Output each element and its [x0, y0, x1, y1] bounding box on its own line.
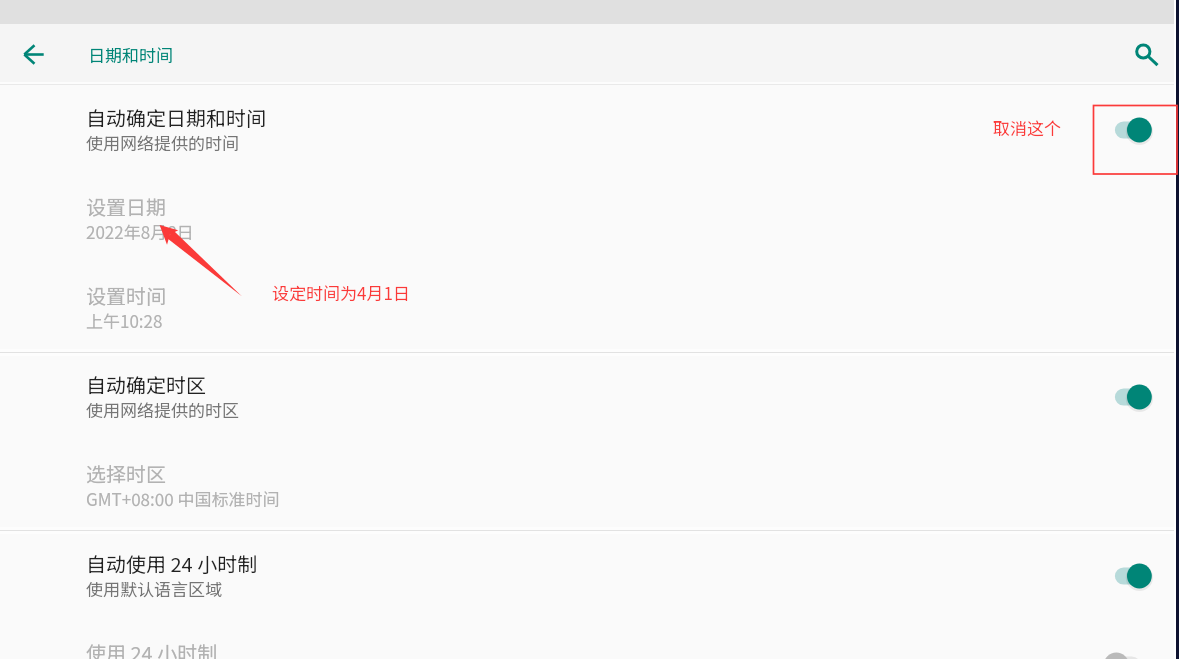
staticText: 设置日期	[86, 192, 166, 221]
staticText: 设定时间为4月1日	[272, 280, 410, 305]
staticText: 设置时间	[86, 281, 166, 310]
button[interactable]: 设置日期	[0, 174, 1179, 263]
button[interactable]: 自动确定时区	[0, 352, 1179, 441]
button[interactable]: Toggle on	[1101, 552, 1165, 600]
staticText: 自动确定日期和时间	[86, 103, 266, 132]
staticText: 使用网络提供的时间	[86, 130, 239, 155]
staticText: 2022年8月8日	[86, 219, 194, 244]
button[interactable]: 选择时区	[0, 441, 1179, 530]
button[interactable]: Toggle on	[1101, 373, 1165, 421]
button[interactable]: Back	[10, 31, 56, 77]
button[interactable]: Toggle on	[1101, 106, 1165, 154]
staticText: 取消这个	[993, 115, 1061, 140]
staticText: 使用网络提供的时区	[86, 397, 239, 422]
staticText: GMT+08:00 中国标准时间	[86, 486, 280, 511]
staticText: 使用 24 小时制	[86, 638, 218, 659]
staticText: 自动使用 24 小时制	[86, 549, 258, 578]
staticText: 选择时区	[86, 459, 166, 488]
staticText: 上午10:28	[86, 308, 163, 333]
staticText: 日期和时间	[88, 42, 173, 67]
button[interactable]: 自动使用 24 小时制	[0, 531, 1179, 620]
button[interactable]: 设置时间	[0, 263, 1179, 352]
button[interactable]: Toggle off	[1101, 641, 1165, 659]
staticText: 自动确定时区	[86, 370, 206, 399]
button[interactable]: 自动确定日期和时间	[0, 85, 1179, 174]
staticText: 使用默认语言区域	[86, 576, 222, 601]
button[interactable]: 使用 24 小时制	[0, 620, 1179, 659]
button[interactable]: Search	[1124, 31, 1170, 77]
